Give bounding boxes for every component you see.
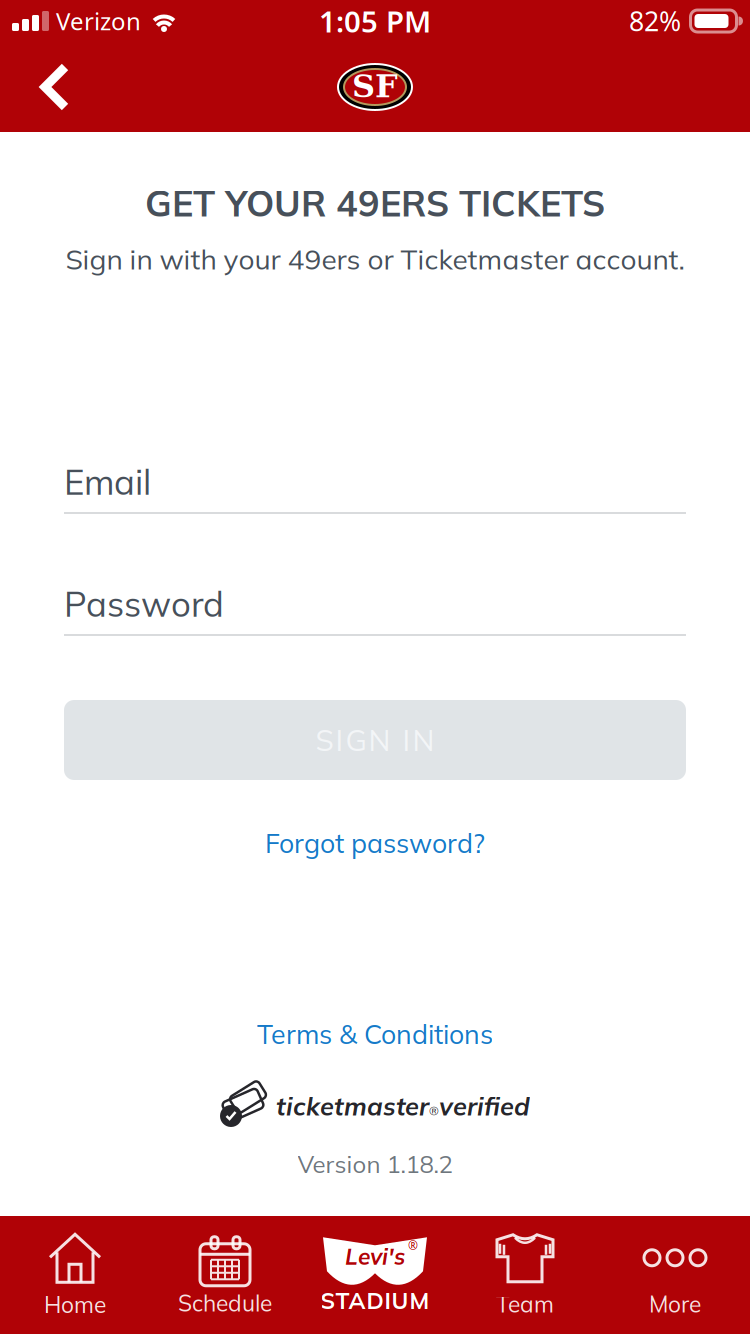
button[interactable]: More (600, 1219, 750, 1331)
button[interactable]: Team (450, 1219, 600, 1331)
staticText: Schedule (178, 1289, 272, 1317)
staticText: Email (64, 460, 151, 503)
staticText: GET YOUR 49ERS TICKETS (145, 180, 605, 226)
button[interactable]: Levi's Stadium (300, 1219, 450, 1331)
button[interactable]: Back (0, 43, 70, 131)
staticText: Levi's (345, 1242, 405, 1270)
staticText: Home (44, 1290, 106, 1319)
staticText: More (649, 1290, 701, 1318)
staticText: Version 1.18.2 (297, 1149, 452, 1179)
staticText: Team (496, 1290, 554, 1318)
staticText: 1:05 PM (319, 1, 431, 40)
staticText: STADIUM (320, 1286, 429, 1315)
button[interactable]: Email (64, 460, 686, 514)
button[interactable]: Schedule (150, 1219, 300, 1331)
staticText: 82% (629, 3, 681, 39)
staticText: ticketmaster®verified (276, 1090, 530, 1121)
staticText: SF (352, 67, 398, 105)
staticText: Forgot password? (265, 826, 485, 860)
button[interactable]: Home (0, 1219, 150, 1331)
staticText: Verizon (56, 5, 141, 37)
staticText: Password (64, 582, 224, 625)
button[interactable]: Terms & Conditions (257, 1017, 493, 1051)
button[interactable]: Password (64, 582, 686, 636)
button[interactable]: Forgot password? (265, 826, 485, 860)
staticText: SIGN IN (315, 722, 434, 758)
staticText: Sign in with your 49ers or Ticketmaster … (65, 241, 684, 276)
staticText: ® (408, 1237, 418, 1253)
staticText: Terms & Conditions (257, 1017, 493, 1051)
